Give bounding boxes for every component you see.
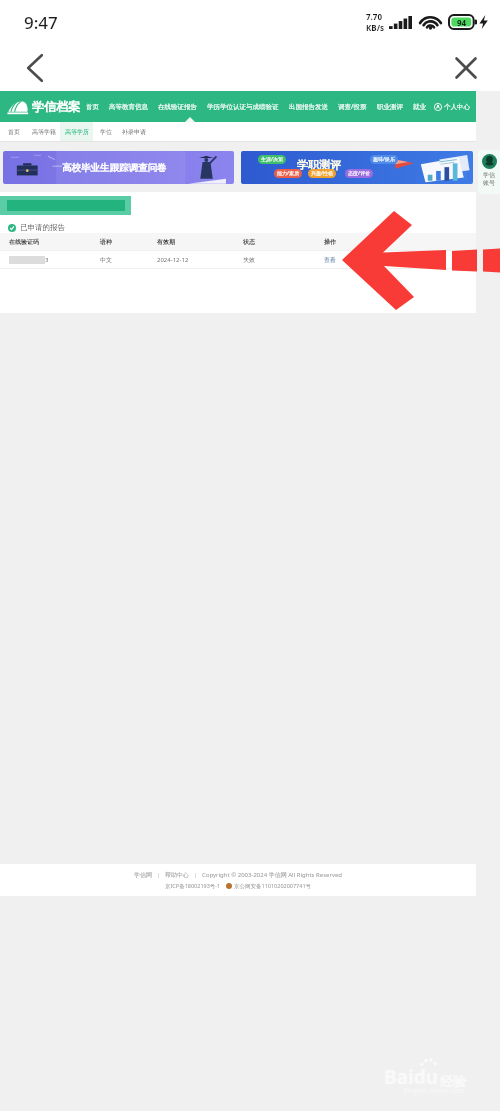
- staticText: 就业: [413, 103, 426, 111]
- button[interactable]: 帮助中心: [165, 871, 189, 879]
- staticText: 首页: [8, 128, 20, 136]
- staticText: 在线验证报告: [158, 103, 197, 111]
- staticText: 京公网安备11010202007741号: [234, 882, 312, 890]
- staticText: 2024-12-12: [157, 256, 189, 264]
- staticText: 生涯/决策: [261, 156, 283, 163]
- staticText: 失效: [243, 256, 255, 264]
- staticText: 高等学历: [65, 128, 89, 136]
- staticText: 学信档案: [32, 99, 80, 114]
- staticText: 操作: [324, 238, 336, 246]
- button[interactable]: 学位: [93, 122, 118, 142]
- button[interactable]: 高等教育信息: [104, 91, 153, 122]
- button[interactable]: 补录申请: [118, 122, 149, 142]
- button[interactable]: Back: [15, 48, 55, 88]
- button[interactable]: 在线验证报告: [153, 91, 202, 122]
- button[interactable]: 首页: [0, 122, 27, 142]
- staticText: 兴趣/性格: [311, 170, 333, 177]
- button[interactable]: 出国报告发送: [284, 91, 333, 122]
- staticText: 中文: [100, 256, 112, 264]
- staticText: 查看: [324, 256, 336, 264]
- staticText: 学信 账号: [483, 171, 495, 186]
- button[interactable]: 学信账号: [478, 150, 500, 194]
- staticText: 7.70: [366, 11, 382, 22]
- staticText: |: [152, 871, 165, 879]
- staticText: 个人中心: [444, 103, 470, 111]
- staticText: 高等教育信息: [109, 103, 148, 111]
- staticText: 职业测评: [377, 103, 403, 111]
- staticText: 状态: [243, 238, 255, 246]
- staticText: 态度/评价: [348, 170, 370, 177]
- staticText: 学历学位认证与成绩验证: [207, 103, 279, 111]
- staticText: 94: [457, 17, 467, 28]
- staticText: 补录申请: [122, 128, 146, 136]
- staticText: 能力/素质: [277, 170, 299, 177]
- button[interactable]: Close: [446, 48, 486, 88]
- staticText: 趣味/娱乐: [373, 156, 395, 163]
- button[interactable]: 3: [0, 251, 476, 268]
- staticText: 在线验证码: [9, 238, 39, 246]
- button[interactable]: 个人中心: [431, 91, 473, 122]
- staticText: 学位: [100, 128, 112, 136]
- staticText: 3: [45, 256, 49, 264]
- button[interactable]: 职业测评: [372, 91, 408, 122]
- staticText: KB/s: [366, 22, 384, 33]
- button[interactable]: 就业: [408, 91, 431, 122]
- staticText: 高校毕业生跟踪调查问卷: [62, 162, 167, 174]
- staticText: 有效期: [157, 238, 175, 246]
- staticText: 语种: [100, 238, 112, 246]
- button[interactable]: 学历学位认证与成绩验证: [202, 91, 284, 122]
- staticText: Copyright © 2003-2024 学信网 All Rights Res…: [202, 871, 343, 879]
- staticText: 经验: [440, 1073, 466, 1089]
- button[interactable]: 高等学历: [60, 122, 93, 142]
- staticText: 京ICP备18002193号-1: [165, 882, 221, 890]
- button[interactable]: 高等学籍: [27, 122, 60, 142]
- staticText: Baidu: [384, 1064, 439, 1090]
- staticText: 出国报告发送: [289, 103, 328, 111]
- button[interactable]: 调查/投票: [333, 91, 372, 122]
- staticText: |: [189, 871, 202, 879]
- button[interactable]: 学职测评: [241, 151, 473, 184]
- staticText: 学职测评: [297, 158, 341, 172]
- staticText: 首页: [86, 103, 99, 111]
- button[interactable]: 首页: [81, 91, 104, 122]
- staticText: 调查/投票: [338, 102, 367, 111]
- button[interactable]: 学信网: [134, 871, 152, 879]
- button[interactable]: 高校毕业生跟踪调查问卷: [3, 151, 234, 184]
- staticText: 已申请的报告: [20, 223, 65, 232]
- button[interactable]: [0, 196, 131, 215]
- staticText: 高等学籍: [32, 128, 56, 136]
- staticText: 9:47: [24, 11, 58, 34]
